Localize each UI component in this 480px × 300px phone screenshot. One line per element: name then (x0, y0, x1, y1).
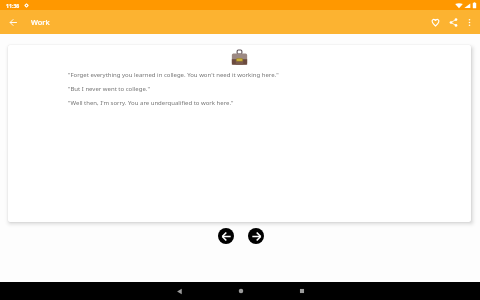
button[interactable]: Next joke (248, 228, 264, 244)
button[interactable]: Share (449, 10, 458, 34)
staticText: Work (31, 17, 50, 27)
staticText: "Forget everything you learned in colleg… (68, 71, 279, 79)
button[interactable]: Previous joke (218, 228, 234, 244)
staticText: "But I never went to college." (68, 85, 150, 93)
button[interactable]: Back (0, 10, 27, 34)
button[interactable]: Favorite (421, 10, 449, 34)
staticText: "Well then, I'm sorry. You are underqual… (68, 99, 234, 107)
button[interactable]: More options (458, 10, 480, 34)
staticText: 11:36 (6, 2, 20, 9)
